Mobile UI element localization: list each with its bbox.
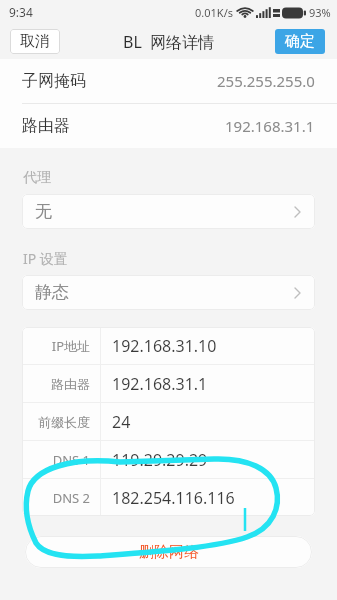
staticText: 路由器 [51,376,90,392]
button[interactable]: 确定 [275,29,325,54]
staticText: IP 设置 [23,249,68,268]
staticText: 255.255.255.0 [217,71,315,91]
staticText: 无 [35,201,52,222]
staticText: 24 [112,411,131,433]
staticText: 0.01K/s [195,5,233,20]
button[interactable]: IP地址 [22,327,315,364]
staticText: 192.168.31.10 [112,335,217,357]
staticText: BL 网络详情 [123,31,215,53]
staticText: 93% [309,5,331,20]
button[interactable]: 无 [22,194,315,229]
button[interactable]: DNS 1 [22,441,315,478]
button[interactable]: 静态 [22,275,315,310]
button[interactable]: 取消 [10,29,60,54]
button[interactable]: 删除网络 [25,536,312,568]
button[interactable]: 子网掩码 [0,59,337,103]
staticText: 静态 [35,282,69,303]
staticText: 路由器 [22,116,70,136]
staticText: DNS 2 [52,489,90,507]
staticText: 确定 [285,32,315,51]
staticText: 182.254.116.116 [112,487,235,509]
staticText: 取消 [20,32,50,51]
staticText: 子网掩码 [22,71,86,91]
staticText: DNS 1 [52,451,90,469]
staticText: 192.168.31.1 [112,373,208,395]
staticText: 119.29.29.29 [112,449,208,471]
staticText: 代理 [23,169,51,187]
button[interactable]: 路由器 [0,104,337,148]
button[interactable]: 前缀长度 [22,403,315,440]
button[interactable]: DNS 2 [22,479,315,516]
staticText: 前缀长度 [38,414,90,430]
staticText: 9:34 [9,4,33,20]
staticText: IP地址 [51,337,90,355]
staticText: 192.168.31.1 [225,116,315,136]
staticText: 删除网络 [139,543,199,562]
button[interactable]: 路由器 [22,365,315,402]
